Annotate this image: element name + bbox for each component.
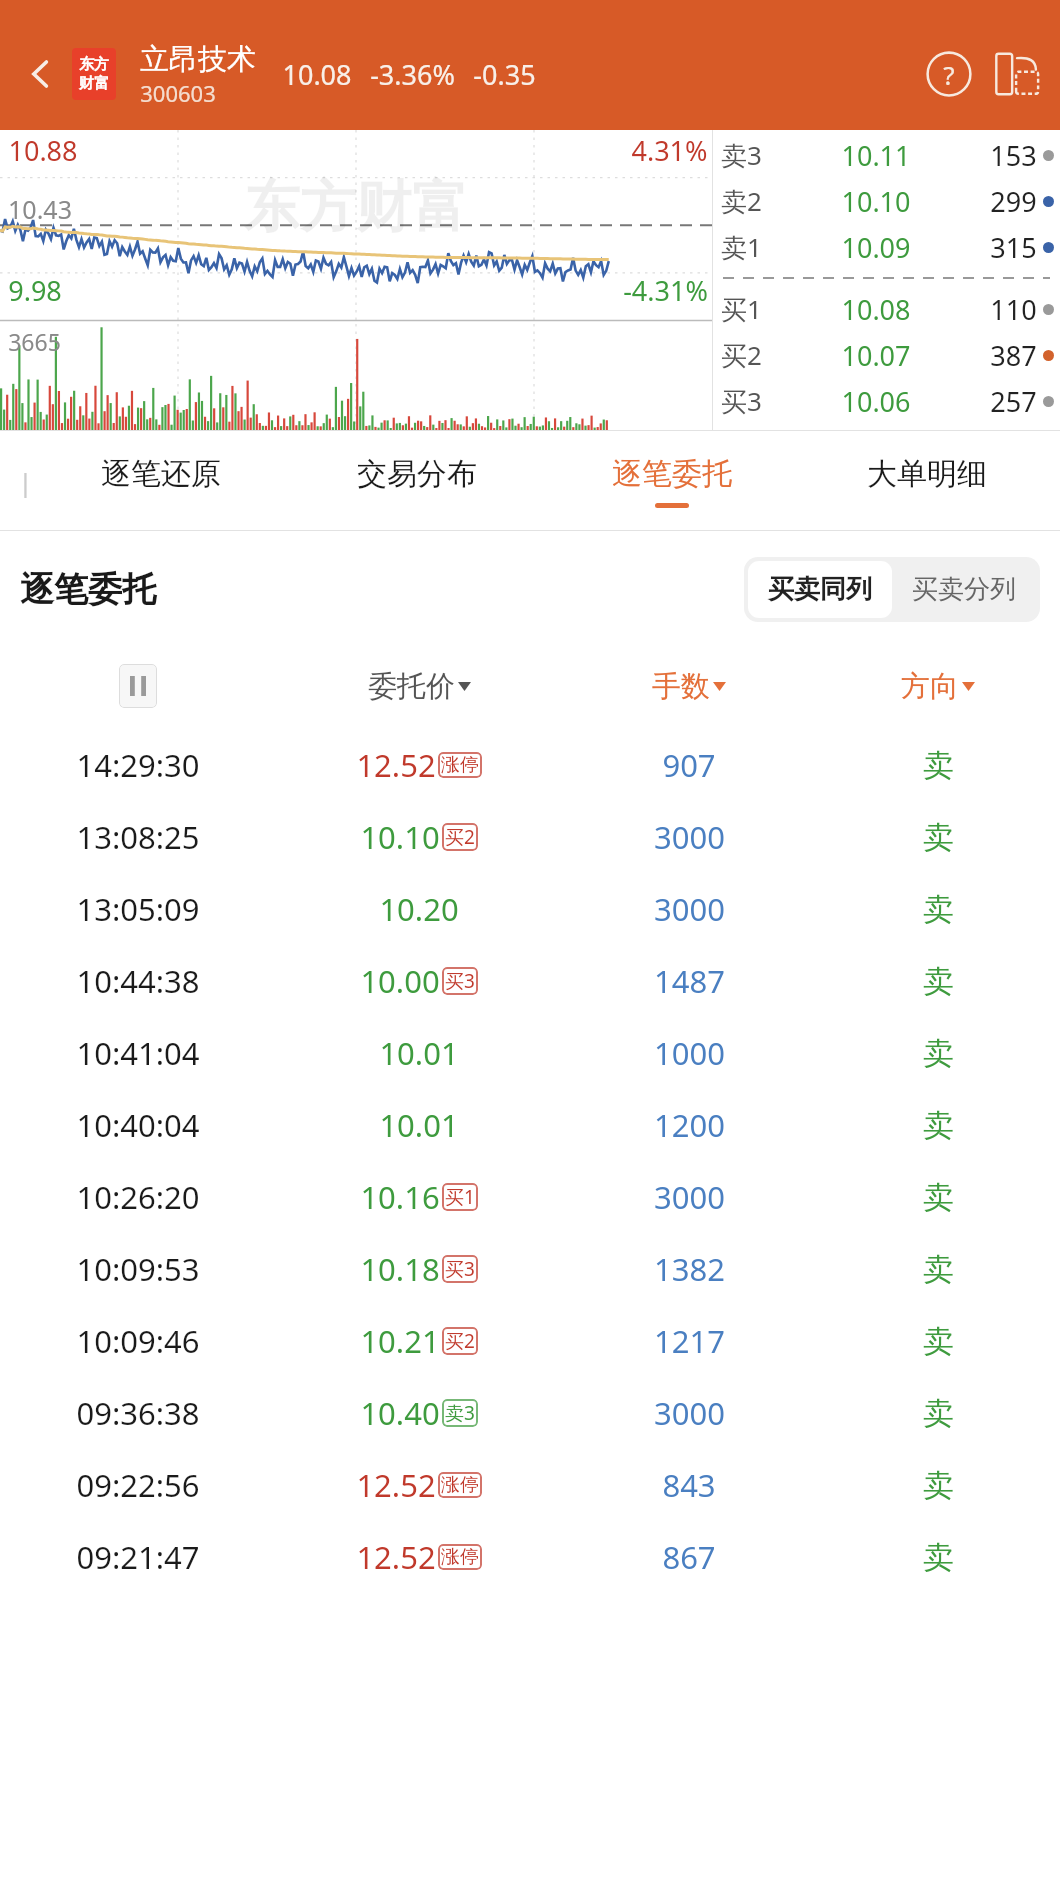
staticText: 买卖同列 (768, 573, 872, 606)
button[interactable]: 买卖分列 (892, 561, 1036, 618)
button[interactable]: 09:22:56 (0, 1449, 1060, 1521)
staticText: 3000 (654, 1392, 725, 1434)
button[interactable]: Pause updates (119, 664, 157, 708)
staticText: 1487 (654, 960, 725, 1002)
staticText: 10.18 (360, 1248, 440, 1290)
staticText: 大单明细 (867, 455, 987, 493)
button[interactable]: 买1 (713, 286, 1060, 332)
staticText: 10.11 (841, 137, 911, 174)
staticText: 10:44:38 (76, 960, 200, 1002)
staticText: 10:09:46 (76, 1320, 200, 1362)
staticText: 843 (662, 1464, 716, 1506)
button[interactable]: 卖2 (713, 178, 1060, 224)
staticText: 方向 (901, 668, 959, 705)
button[interactable]: 09:36:38 (0, 1377, 1060, 1449)
button[interactable]: 买卖同列 (748, 561, 892, 618)
staticText: 卖 (923, 1178, 954, 1217)
staticText: 3665 (8, 326, 61, 357)
staticText: 1200 (654, 1104, 725, 1146)
button[interactable]: 交易分布 (289, 431, 544, 531)
staticText: 10:41:04 (76, 1032, 200, 1074)
staticText: 257 (990, 383, 1037, 420)
staticText: 3000 (654, 888, 725, 930)
button[interactable]: 10:09:46 (0, 1305, 1060, 1377)
staticText: 10.88 (8, 132, 78, 169)
button[interactable]: 10:44:38 (0, 945, 1060, 1017)
staticText: 逐笔还原 (101, 455, 221, 493)
staticText: 3000 (654, 1176, 725, 1218)
staticText: 9.98 (8, 272, 62, 309)
staticText: 买卖分列 (912, 573, 1016, 606)
staticText: 涨停 (441, 753, 479, 777)
staticText: 买2 (445, 1328, 475, 1354)
staticText: 涨停 (441, 1545, 479, 1569)
staticText: 立昂技术 (140, 41, 256, 78)
staticText: -3.36% (370, 56, 455, 93)
button[interactable]: 卖3 (713, 132, 1060, 178)
staticText: 10.09 (841, 229, 911, 266)
staticText: 交易分布 (357, 455, 477, 493)
staticText: 买1 (445, 1184, 475, 1210)
button[interactable]: 10:26:20 (0, 1161, 1060, 1233)
staticText: 卖2 (721, 183, 762, 219)
staticText: 3000 (654, 816, 725, 858)
staticText: 卖 (923, 890, 954, 929)
staticText: 东方 (79, 55, 109, 74)
button[interactable]: 10:40:04 (0, 1089, 1060, 1161)
button[interactable]: Rotate screen (988, 45, 1046, 103)
staticText: 10.08 (841, 291, 911, 328)
staticText: 卖3 (445, 1400, 475, 1426)
staticText: 14:29:30 (76, 744, 200, 786)
staticText: 10:09:53 (76, 1248, 200, 1290)
button[interactable]: 买3 (713, 378, 1060, 424)
staticText: 卖 (923, 1106, 954, 1145)
staticText: ? (943, 57, 955, 92)
button[interactable]: 方向 (816, 643, 1060, 729)
staticText: 300603 (140, 78, 216, 108)
staticText: 买1 (721, 291, 762, 327)
button[interactable]: 卖1 (713, 224, 1060, 270)
button[interactable]: Help (920, 45, 978, 103)
staticText: 卖 (923, 1250, 954, 1289)
button[interactable]: 逐笔委托 (544, 431, 799, 531)
staticText: 10.00 (360, 960, 440, 1002)
button[interactable]: 手数 (562, 643, 816, 729)
staticText: 卖 (923, 962, 954, 1001)
staticText: 财富 (79, 74, 109, 93)
staticText: 委托价 (368, 668, 455, 705)
button[interactable]: 委托价 (276, 643, 562, 729)
staticText: 涨停 (441, 1473, 479, 1497)
button[interactable]: 买2 (713, 332, 1060, 378)
button[interactable]: 10:41:04 (0, 1017, 1060, 1089)
staticText: 09:36:38 (76, 1392, 200, 1434)
button[interactable]: 13:08:25 (0, 801, 1060, 873)
staticText: 买3 (445, 1256, 475, 1282)
staticText: 1217 (654, 1320, 725, 1362)
staticText: 387 (990, 337, 1037, 374)
button[interactable]: 09:21:47 (0, 1521, 1060, 1593)
staticText: 09:22:56 (76, 1464, 200, 1506)
staticText: | (18, 464, 33, 499)
button[interactable]: 13:05:09 (0, 873, 1060, 945)
button[interactable]: 10:09:53 (0, 1233, 1060, 1305)
staticText: 买3 (445, 968, 475, 994)
staticText: 12.52 (356, 1464, 436, 1506)
staticText: 10.21 (360, 1320, 440, 1362)
staticText: 13:08:25 (76, 816, 200, 858)
staticText: 卖 (923, 1322, 954, 1361)
staticText: 10.43 (8, 192, 72, 226)
staticText: 买2 (445, 824, 475, 850)
staticText: 1382 (654, 1248, 725, 1290)
staticText: 卖 (923, 1034, 954, 1073)
staticText: -0.35 (473, 56, 536, 93)
staticText: 逐笔委托 (20, 568, 156, 611)
button[interactable]: 逐笔还原 (33, 431, 289, 531)
button[interactable]: 大单明细 (799, 431, 1054, 531)
staticText: 10.06 (841, 383, 911, 420)
staticText: 867 (662, 1536, 716, 1578)
staticText: 1000 (654, 1032, 725, 1074)
button[interactable]: 14:29:30 (0, 729, 1060, 801)
staticText: 逐笔委托 (612, 455, 732, 493)
button[interactable]: Back (14, 47, 68, 101)
staticText: 12.52 (356, 744, 436, 786)
